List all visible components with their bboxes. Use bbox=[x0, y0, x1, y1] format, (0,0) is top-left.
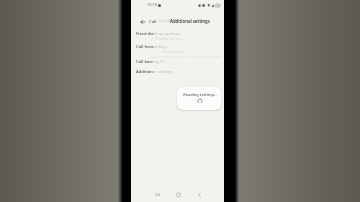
button[interactable] bbox=[174, 190, 183, 199]
staticText: Waiting call of voice call forwarding wh… bbox=[150, 54, 222, 59]
staticText: Call forw bbox=[136, 44, 154, 50]
button[interactable] bbox=[139, 18, 147, 26]
staticText: No network bbox=[162, 49, 184, 54]
button[interactable] bbox=[195, 190, 204, 199]
button[interactable]: Call barr bbox=[136, 59, 222, 66]
staticText: Disable barring bbox=[155, 36, 184, 41]
staticText: al settings bbox=[153, 69, 173, 75]
button[interactable]: Fixed dia bbox=[136, 31, 222, 38]
staticText: to Call bbox=[159, 18, 172, 24]
button[interactable] bbox=[153, 190, 162, 199]
staticText: Call bbox=[149, 18, 157, 24]
staticText: Call barr bbox=[136, 59, 153, 65]
staticText: lling numbers bbox=[154, 31, 181, 37]
staticText: Additional settings bbox=[170, 18, 210, 24]
button[interactable]: Call forw bbox=[136, 44, 222, 51]
staticText: ing (*) bbox=[153, 59, 165, 65]
staticText: arding bbox=[154, 44, 167, 50]
button[interactable]: Addition bbox=[136, 69, 222, 76]
staticText: Reading settings... bbox=[183, 92, 218, 97]
staticText: Fixed dia bbox=[136, 31, 154, 37]
staticText: 12:16 bbox=[147, 2, 157, 7]
staticText: Addition bbox=[136, 69, 153, 75]
